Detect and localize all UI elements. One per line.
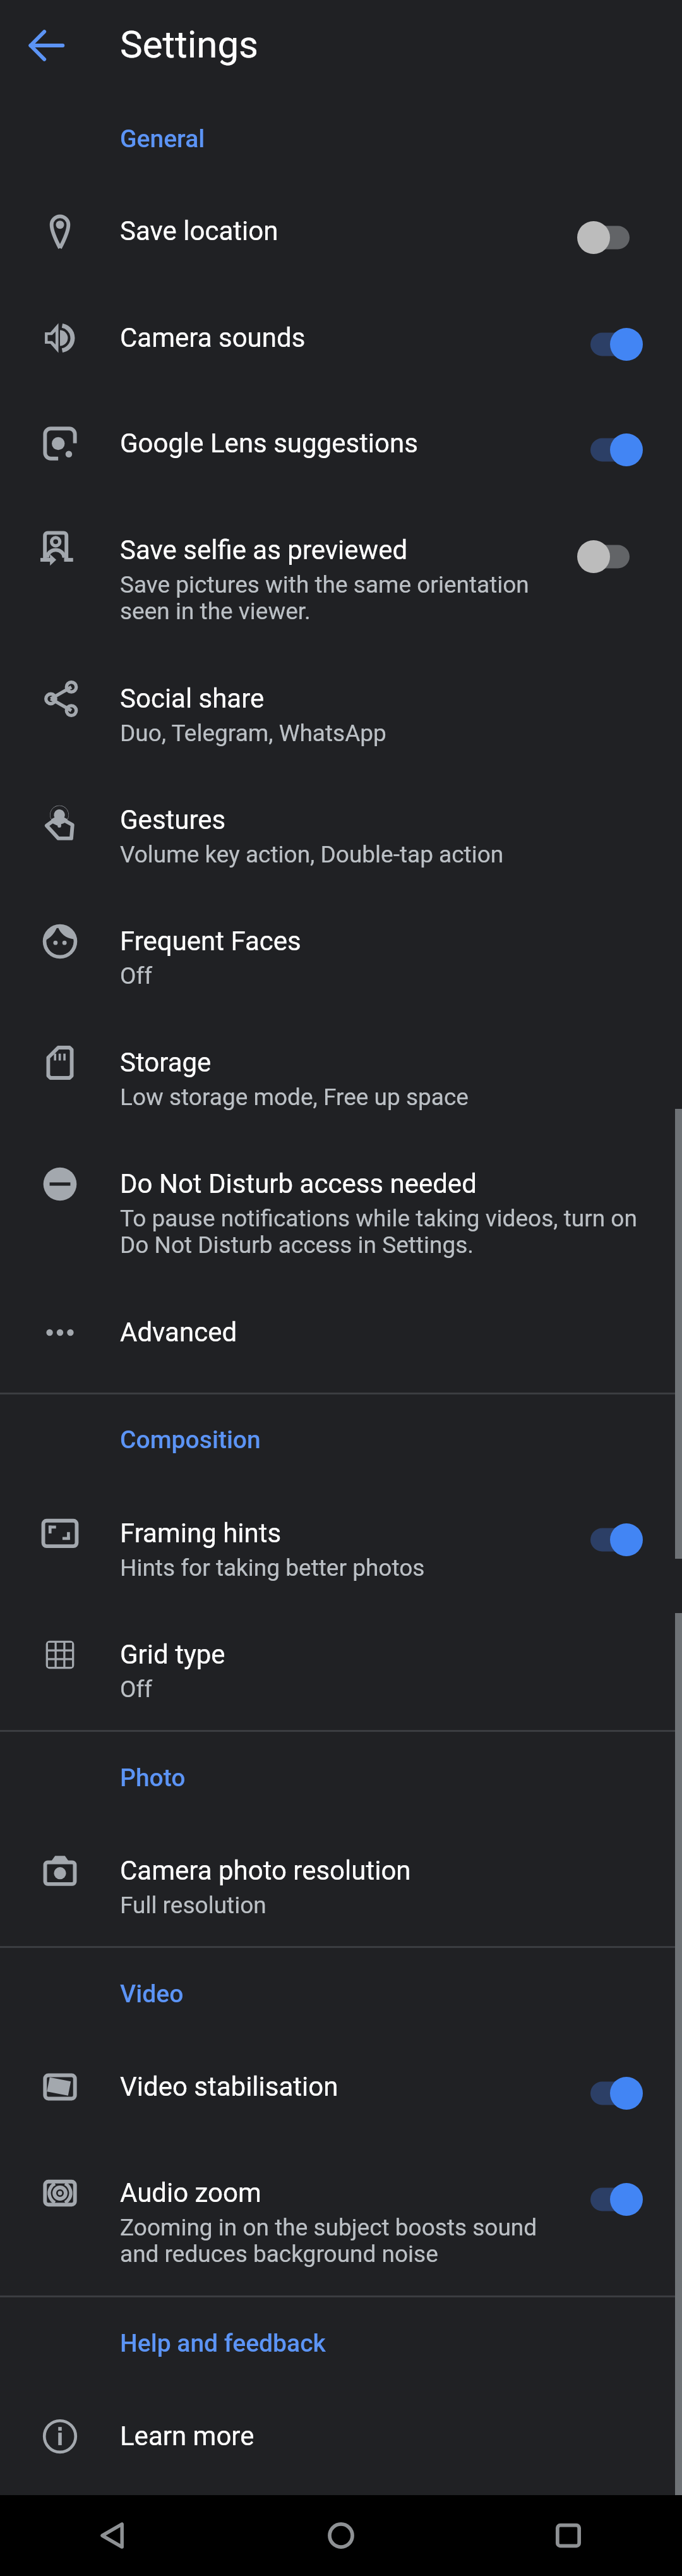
staticText: Grid type [120,1639,225,1670]
button[interactable]: Save selfie as previewed [566,524,644,590]
staticText: Low storage mode, Free up space [120,1084,469,1111]
staticText: Hints for taking better photos [120,1554,425,1581]
button[interactable]: Video stabilisation [0,2043,682,2115]
button[interactable]: Do Not Disturb access needed [0,1140,682,1265]
button[interactable]: Back [13,12,80,79]
button[interactable]: Social share [0,655,682,753]
staticText: Off [120,1676,153,1703]
staticText: Composition [120,1425,261,1454]
button[interactable]: Save location [0,187,682,259]
staticText: Settings [120,22,259,66]
staticText: Save pictures with the same orientation … [120,571,529,625]
staticText: Off [120,962,153,989]
staticText: Frequent Faces [120,926,301,957]
staticText: Video [120,1980,184,2009]
staticText: Do Not Disturb access needed [120,1168,477,1199]
staticText: Duo, Telegram, WhatsApp [120,720,386,747]
button[interactable]: Framing hints [566,1507,644,1573]
staticText: Zooming in on the subject boosts sound a… [120,2214,537,2268]
button[interactable]: Storage [0,1019,682,1117]
staticText: Full resolution [120,1892,266,1919]
button[interactable]: Camera sounds [0,294,682,366]
button[interactable]: Back [0,2495,227,2576]
button[interactable]: Audio zoom [566,2167,644,2232]
button[interactable]: Video stabilisation [566,2060,644,2126]
button[interactable]: Learn more [0,2392,682,2464]
staticText: Help and feedback [120,2329,326,2358]
staticText: Camera sounds [120,322,306,353]
button[interactable]: Composition [0,1409,682,1463]
staticText: Advanced [120,1317,237,1348]
button[interactable]: Grid type [0,1611,682,1709]
button[interactable]: Advanced [0,1288,682,1360]
button[interactable]: General [0,108,682,162]
button[interactable]: Recents [455,2495,682,2576]
button[interactable]: Frequent Faces [0,897,682,996]
button[interactable]: Gestures [0,776,682,874]
staticText: To pause notifications while taking vide… [120,1205,637,1259]
button[interactable]: Help and feedback [0,2313,682,2367]
staticText: Camera photo resolution [120,1855,411,1886]
button[interactable]: Camera sounds [566,311,644,377]
staticText: Volume key action, Double-tap action [120,841,504,868]
button[interactable]: Save location [566,205,644,270]
button[interactable]: Save selfie as previewed [0,506,682,631]
staticText: Storage [120,1047,212,1078]
staticText: Social share [120,683,265,714]
button[interactable]: Video [0,1963,682,2017]
button[interactable]: Audio zoom [0,2149,682,2274]
staticText: Audio zoom [120,2177,261,2208]
staticText: General [120,124,205,154]
staticText: Save selfie as previewed [120,535,408,565]
staticText: Video stabilisation [120,2071,338,2102]
button[interactable]: Camera photo resolution [0,1827,682,1925]
button[interactable]: Google Lens suggestions [0,399,682,471]
button[interactable]: Google Lens suggestions [566,417,644,483]
staticText: Photo [120,1763,186,1793]
staticText: Framing hints [120,1518,282,1549]
button[interactable]: Framing hints [0,1489,682,1588]
button[interactable]: Photo [0,1747,682,1801]
staticText: Learn more [120,2421,254,2452]
staticText: Gestures [120,804,226,835]
staticText: Save location [120,215,278,246]
button[interactable]: Home [227,2495,455,2576]
staticText: Google Lens suggestions [120,428,418,459]
